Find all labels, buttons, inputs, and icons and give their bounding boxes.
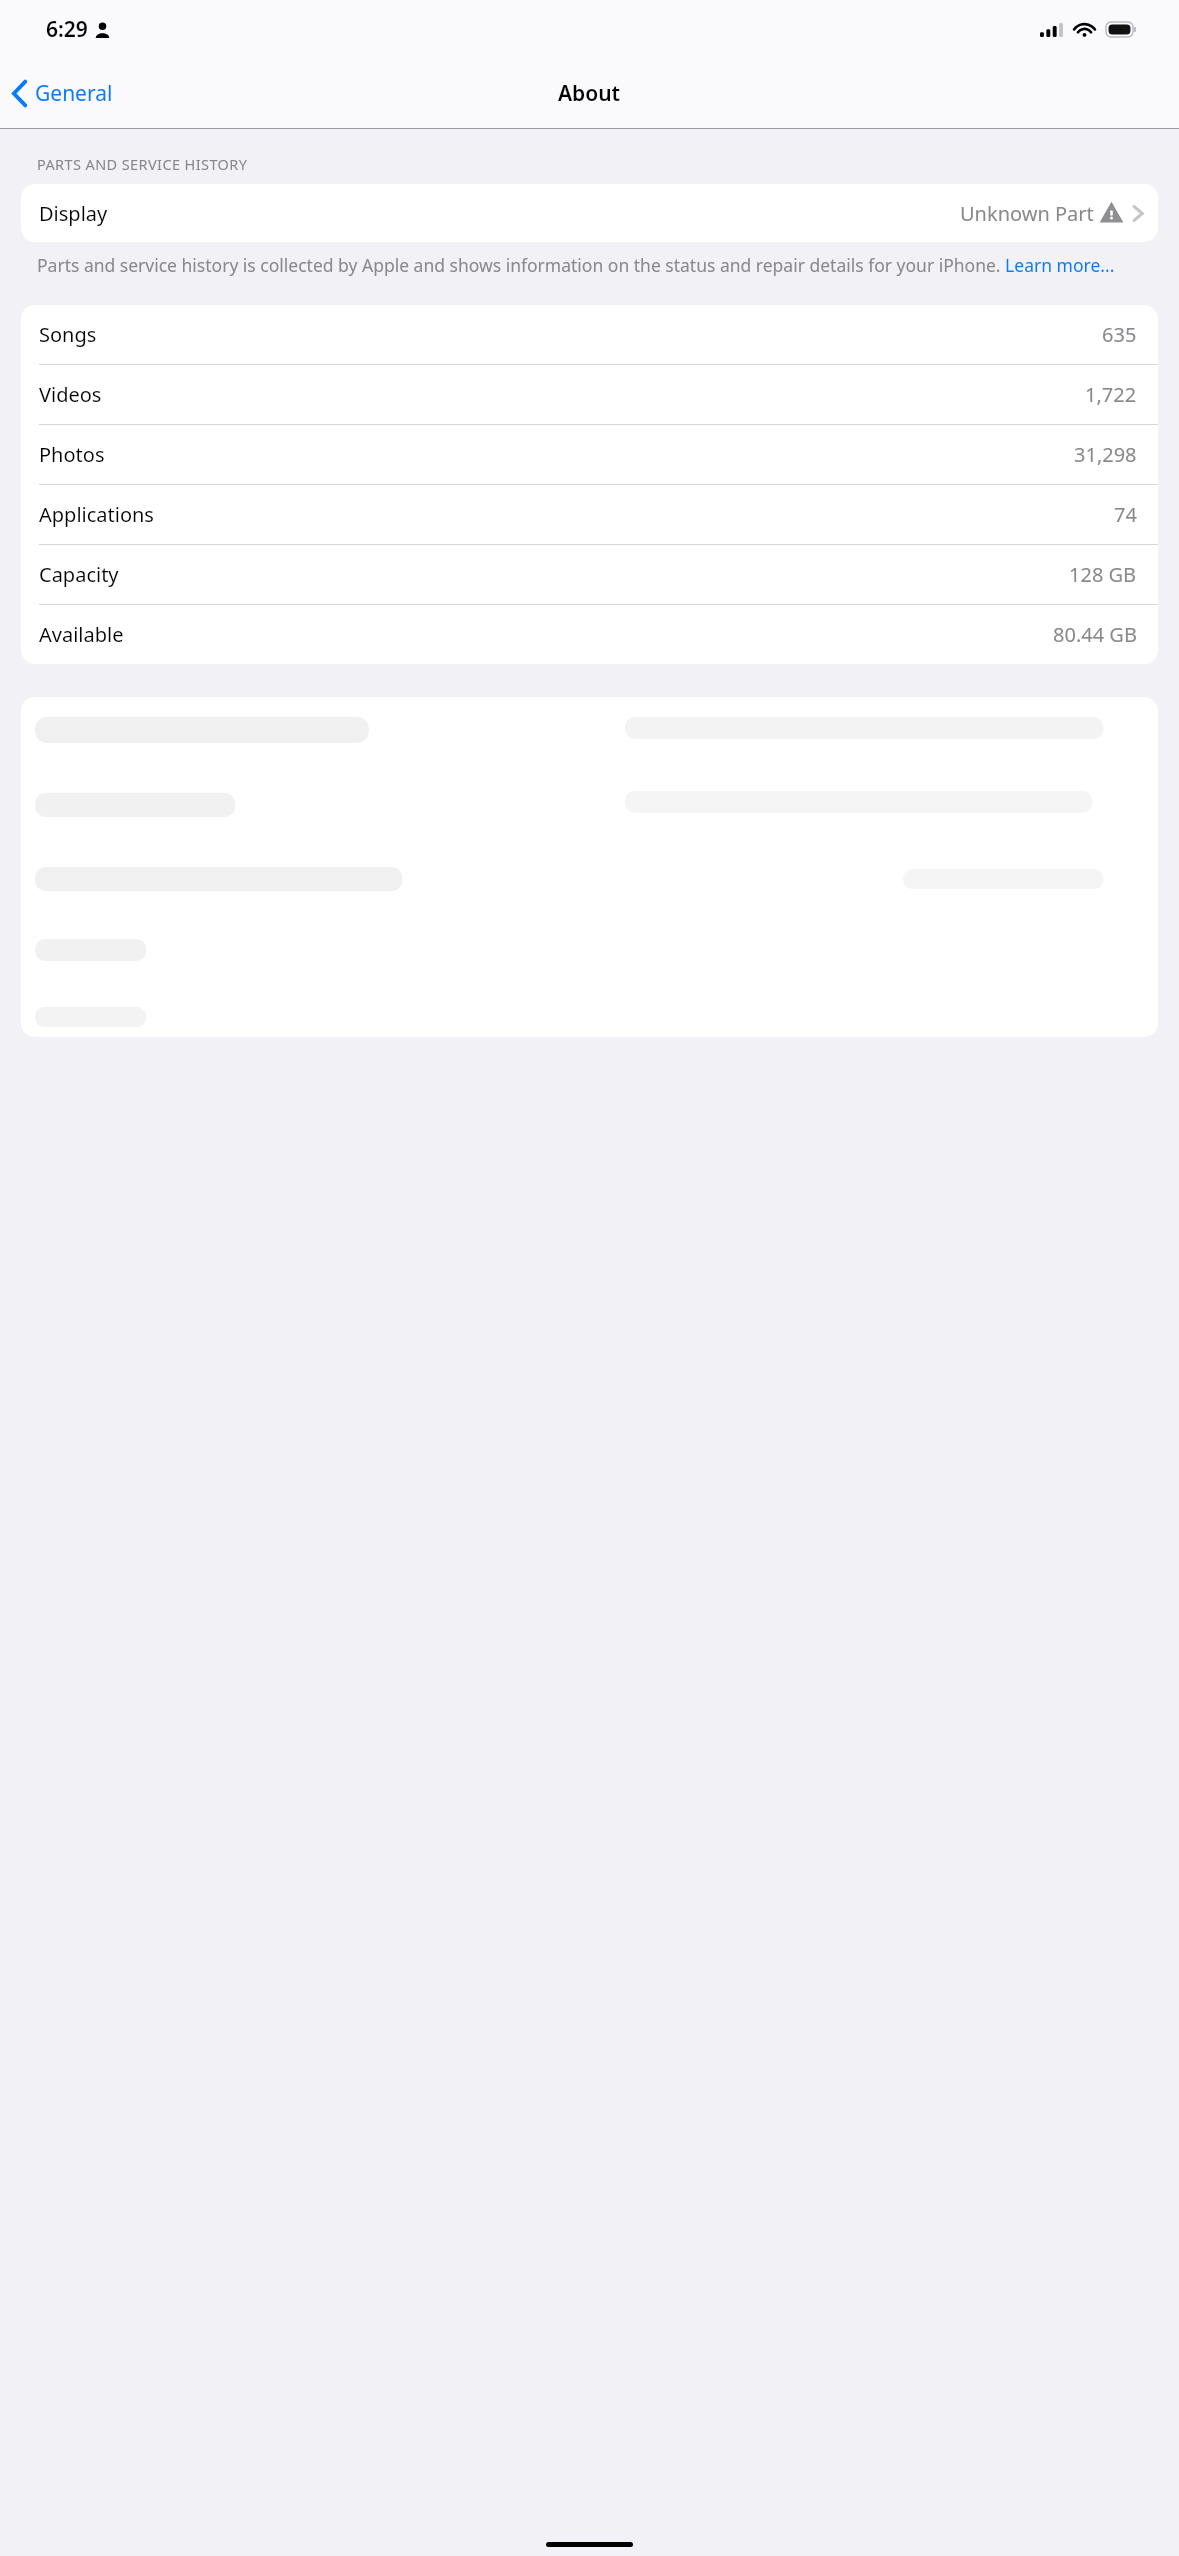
staticText: Videos: [39, 381, 102, 408]
staticText: Parts and service history is collected b…: [37, 253, 1115, 277]
staticText: 31,298: [1074, 441, 1137, 468]
staticText: Applications: [39, 501, 154, 528]
staticText: 635: [1102, 321, 1137, 348]
staticText: Unknown Part: [960, 200, 1094, 227]
staticText: Display: [39, 200, 108, 227]
button[interactable]: Applications: [21, 485, 1158, 544]
staticText: 128 GB: [1069, 561, 1137, 588]
staticText: 1,722: [1085, 381, 1137, 408]
staticText: General: [35, 79, 113, 108]
button[interactable]: Capacity: [21, 545, 1158, 604]
staticText: Songs: [39, 321, 97, 348]
staticText: Available: [39, 621, 124, 648]
staticText: Capacity: [39, 561, 119, 588]
button[interactable]: Videos: [21, 365, 1158, 424]
button[interactable]: Available: [21, 605, 1158, 664]
staticText: 80.44 GB: [1053, 621, 1137, 648]
staticText: PARTS AND SERVICE HISTORY: [37, 154, 248, 174]
button[interactable]: Display: [21, 184, 1158, 242]
other: Show details: [1132, 203, 1144, 224]
staticText: Photos: [39, 441, 105, 468]
button[interactable]: General: [0, 71, 125, 116]
staticText: 6:29: [46, 15, 88, 44]
staticText: About: [558, 79, 621, 108]
staticText: 74: [1114, 501, 1137, 528]
button[interactable]: Songs: [21, 305, 1158, 364]
button[interactable]: Photos: [21, 425, 1158, 484]
